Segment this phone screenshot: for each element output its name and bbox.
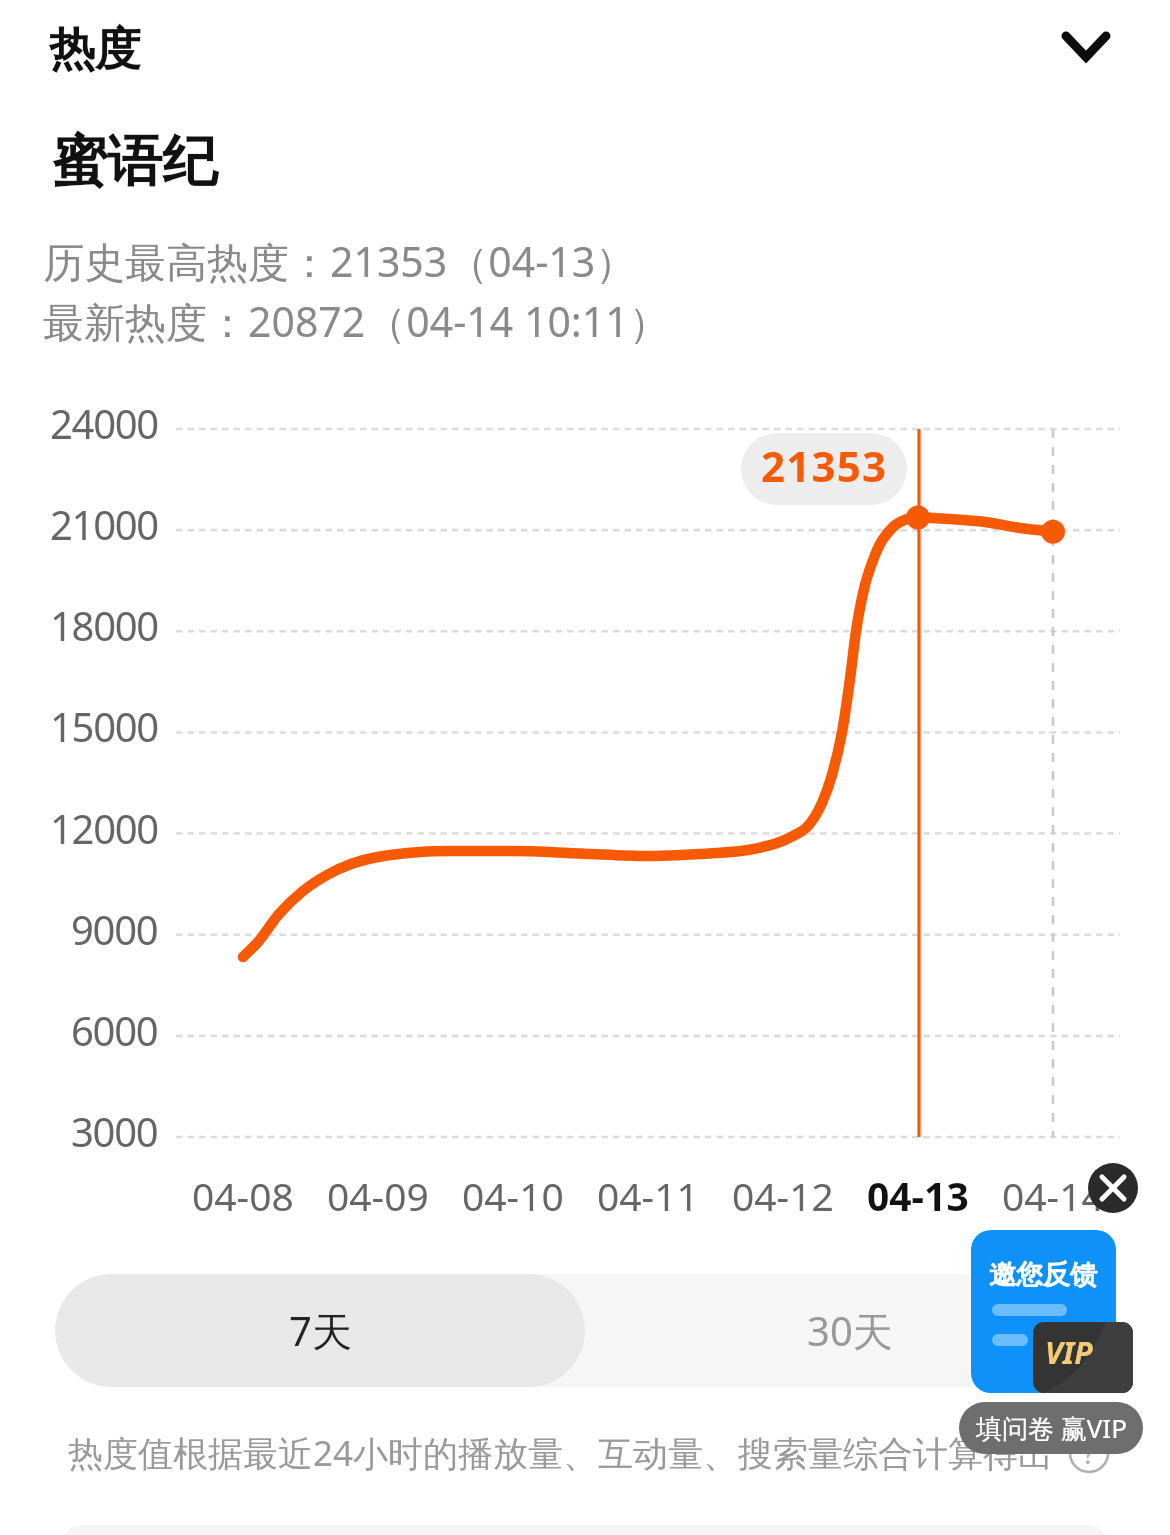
staticText: 历史最高热度：21353（04-13） [43, 233, 637, 289]
button[interactable]: 邀您反馈 [971, 1230, 1116, 1393]
staticText: ? [1083, 1435, 1095, 1472]
button[interactable]: Close [1088, 1163, 1138, 1213]
staticText: 热度值根据最近24小时的播放量、互动量、搜索量综合计算得出 [68, 1429, 1054, 1477]
staticText: 热度 [49, 21, 141, 79]
staticText: 04-10 [462, 1169, 564, 1222]
button[interactable]: 7天 [55, 1274, 585, 1387]
staticText: 蜜语纪 [52, 127, 217, 196]
button[interactable]: Help [1068, 1432, 1110, 1474]
staticText: 04-14 [1002, 1169, 1104, 1222]
staticText: 6000 [71, 1003, 158, 1057]
staticText: 04-13 [867, 1169, 969, 1222]
staticText: 12000 [50, 801, 158, 855]
staticText: 15000 [50, 699, 158, 753]
staticText: VIP [1045, 1332, 1093, 1373]
staticText: 04-11 [597, 1169, 699, 1222]
staticText: 3000 [71, 1104, 158, 1158]
staticText: 24000 [50, 396, 158, 450]
button[interactable]: 热度 [30, 0, 190, 92]
staticText: 30天 [807, 1303, 893, 1358]
staticText: 最新热度：20872（04-14 10:11） [43, 293, 670, 349]
staticText: 邀您反馈 [989, 1258, 1097, 1292]
staticText: 18000 [50, 598, 158, 652]
button[interactable]: 填问卷 赢VIP [959, 1402, 1143, 1454]
staticText: 9000 [71, 902, 158, 956]
staticText: 21000 [50, 497, 158, 551]
staticText: 21353 [761, 437, 888, 494]
staticText: 04-09 [327, 1169, 429, 1222]
staticText: 04-08 [192, 1169, 294, 1222]
button[interactable]: Collapse [1041, 9, 1113, 81]
staticText: 7天 [289, 1303, 352, 1358]
staticText: 填问卷 赢VIP [976, 1410, 1127, 1446]
staticText: 04-12 [732, 1169, 834, 1222]
button[interactable]: 30天 [585, 1274, 1115, 1387]
